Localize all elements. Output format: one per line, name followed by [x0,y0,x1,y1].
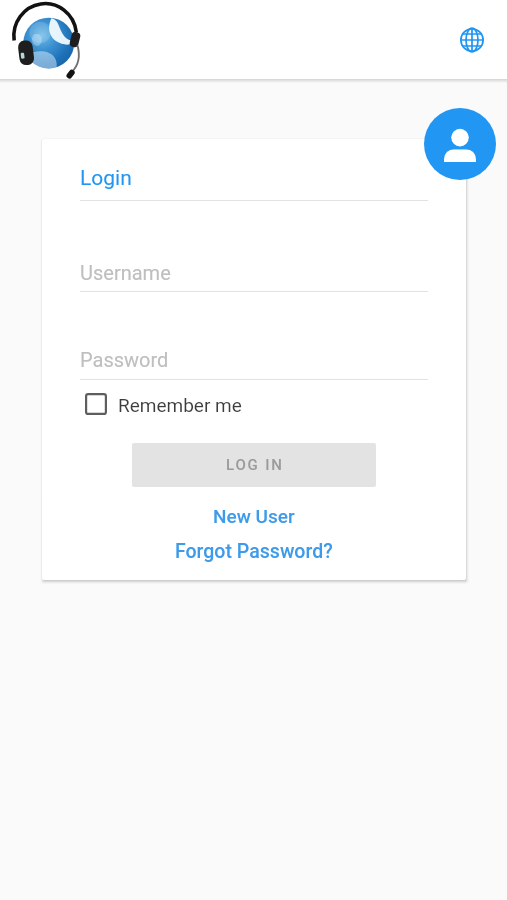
button[interactable]: Remember me [85,384,242,426]
button[interactable]: Account [424,108,496,180]
staticText: Login [80,166,132,191]
staticText: Remember me [118,394,242,416]
staticText: Password [80,348,169,371]
staticText: Username [80,261,171,284]
button[interactable]: New User [42,502,466,530]
button[interactable]: LOG IN [132,443,376,487]
staticText: LOG IN [226,456,284,474]
button[interactable]: Change language [448,16,496,64]
button[interactable]: Forgot Password? [42,536,466,566]
staticText: Forgot Password? [175,540,333,563]
staticText: New User [213,505,295,527]
